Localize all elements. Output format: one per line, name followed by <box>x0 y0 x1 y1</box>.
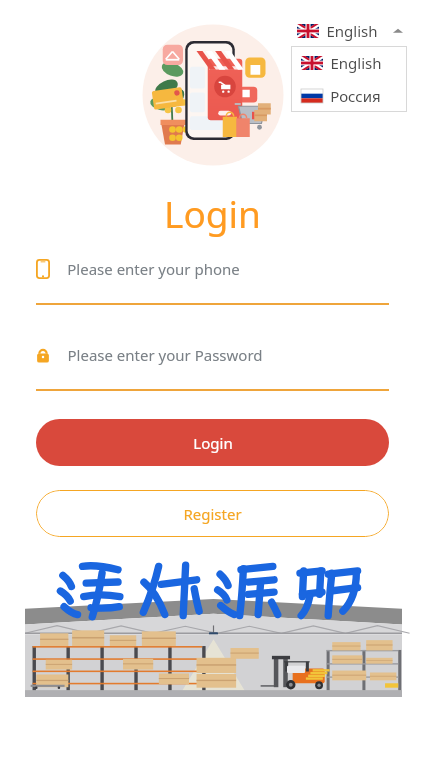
button[interactable]: English <box>295 19 407 43</box>
staticText: Login <box>164 188 261 238</box>
button[interactable]: Россия <box>291 79 407 112</box>
button[interactable]: Collapse language menu <box>391 24 405 38</box>
staticText: Please enter your phone <box>67 259 240 279</box>
staticText: English <box>326 21 378 41</box>
button[interactable]: Login <box>36 419 389 466</box>
button[interactable]: English <box>291 46 407 79</box>
button[interactable]: Register <box>36 490 389 537</box>
staticText: English <box>330 53 382 73</box>
staticText: Please enter your Password <box>67 345 263 365</box>
staticText: Россия <box>330 86 381 106</box>
other: Phone <box>36 259 50 279</box>
staticText: Register <box>183 504 242 524</box>
staticText: Login <box>193 433 233 453</box>
button[interactable]: Phone <box>36 252 389 305</box>
button[interactable]: Password <box>36 338 389 391</box>
other: Password <box>36 345 50 365</box>
